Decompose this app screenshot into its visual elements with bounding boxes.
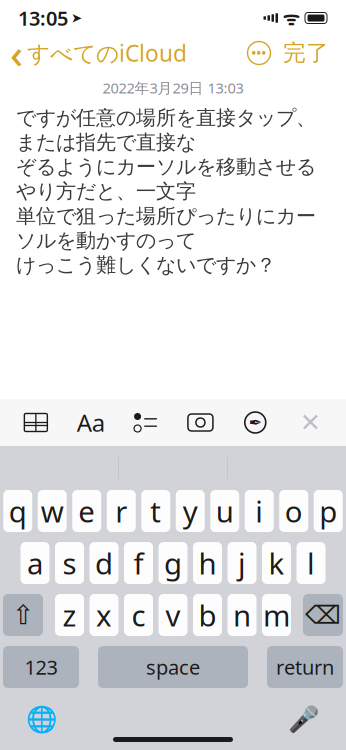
staticText: Aa <box>77 407 105 438</box>
staticText: ᯤ <box>282 6 299 30</box>
button[interactable]: return <box>267 646 343 688</box>
button[interactable]: f <box>124 542 153 584</box>
staticText: 🌐 <box>26 704 58 733</box>
button[interactable]: Switch keyboard <box>22 702 62 736</box>
button[interactable]: s <box>55 542 84 584</box>
button[interactable]: Dictation <box>284 702 324 736</box>
button[interactable]: Checklist <box>123 399 169 445</box>
staticText: o <box>285 491 303 530</box>
button[interactable]: More <box>244 38 274 68</box>
staticText: e <box>78 491 95 530</box>
staticText: x <box>96 595 112 634</box>
button[interactable]: Table <box>13 399 59 445</box>
button[interactable]: b <box>193 594 222 636</box>
staticText: ✕ <box>300 408 321 437</box>
staticText: ✒ <box>249 413 262 432</box>
button[interactable]: Delete <box>303 594 343 636</box>
staticText: 13:05 <box>18 5 68 31</box>
staticText: けっこう難しくないですか？ <box>16 253 276 277</box>
button[interactable]: t <box>141 490 170 532</box>
button[interactable]: ‹ <box>0 22 187 83</box>
staticText: ぞるようにカーソルを移動させるやり方だと、一文字 <box>16 155 316 204</box>
button[interactable]: 完了 <box>274 35 338 71</box>
staticText: ••• <box>251 45 266 61</box>
staticText: 2022年3月29日 13:03 <box>102 78 243 97</box>
staticText: f <box>133 543 143 582</box>
staticText: c <box>131 595 145 634</box>
staticText: p <box>319 491 337 530</box>
staticText: ⇧ <box>12 600 34 630</box>
staticText: u <box>216 491 234 530</box>
button[interactable]: Close <box>287 399 333 445</box>
button[interactable]: e <box>72 490 101 532</box>
button[interactable]: i <box>245 490 274 532</box>
button[interactable]: y <box>176 490 205 532</box>
staticText: r <box>115 491 127 530</box>
button[interactable]: x <box>89 594 118 636</box>
staticText: l <box>307 543 315 582</box>
staticText: b <box>198 595 216 634</box>
staticText: 123 <box>24 654 57 680</box>
staticText: t <box>150 491 161 530</box>
button[interactable]: q <box>3 490 32 532</box>
staticText: ➤ <box>71 10 82 25</box>
button[interactable]: v <box>158 594 187 636</box>
button[interactable]: a <box>20 542 49 584</box>
staticText: a <box>27 543 43 582</box>
staticText: z <box>62 595 76 634</box>
button[interactable]: p <box>314 490 343 532</box>
staticText: return <box>276 654 334 680</box>
button[interactable]: space <box>98 646 248 688</box>
button[interactable]: l <box>296 542 325 584</box>
button[interactable]: j <box>227 542 256 584</box>
button[interactable]: Markup <box>232 399 278 445</box>
staticText: k <box>268 543 284 582</box>
staticText: すべてのiCloud <box>27 38 187 68</box>
button[interactable]: n <box>227 594 256 636</box>
staticText: s <box>62 543 76 582</box>
button[interactable]: o <box>279 490 308 532</box>
button[interactable]: c <box>124 594 153 636</box>
button[interactable]: g <box>158 542 187 584</box>
staticText: m <box>263 595 290 634</box>
button[interactable]: d <box>89 542 118 584</box>
button[interactable]: m <box>262 594 291 636</box>
button[interactable]: w <box>38 490 67 532</box>
button[interactable]: k <box>262 542 291 584</box>
staticText: ⌫ <box>305 601 341 629</box>
staticText: v <box>165 595 180 634</box>
staticText: ですが任意の場所を直接タップ、または指先で直接な <box>16 105 316 155</box>
staticText: space <box>146 654 200 680</box>
button[interactable]: z <box>55 594 84 636</box>
staticText: q <box>9 491 27 530</box>
staticText: w <box>41 491 64 530</box>
staticText: 🎤 <box>288 704 320 733</box>
button[interactable]: r <box>107 490 136 532</box>
staticText: 単位で狙った場所ぴったりにカーソルを動かすのって <box>16 204 316 253</box>
button[interactable]: Shift <box>3 594 43 636</box>
button[interactable]: h <box>193 542 222 584</box>
staticText: h <box>198 543 216 582</box>
button[interactable]: Camera <box>177 399 223 445</box>
button[interactable]: Text format <box>68 399 114 445</box>
button[interactable]: u <box>210 490 239 532</box>
staticText: d <box>95 543 113 582</box>
staticText: i <box>255 491 263 530</box>
staticText: ‹ <box>10 26 23 79</box>
button[interactable]: 123 <box>3 646 79 688</box>
staticText: j <box>238 543 246 582</box>
staticText: g <box>164 543 182 582</box>
staticText: 完了 <box>283 39 329 67</box>
staticText: n <box>233 595 251 634</box>
staticText: y <box>183 491 198 530</box>
